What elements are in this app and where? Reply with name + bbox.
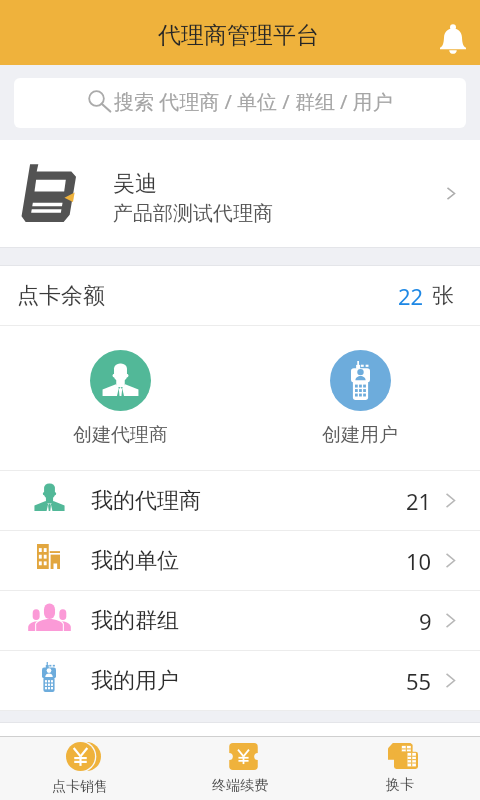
staticText: 我的代理商 bbox=[91, 487, 201, 515]
staticText: 我的群组 bbox=[91, 607, 179, 635]
staticText: 换卡 bbox=[386, 776, 414, 794]
button[interactable]: 搜索 代理商 / 单位 / 群组 / 用户 bbox=[14, 78, 466, 128]
staticText: 我的用户 bbox=[91, 667, 179, 695]
staticText: 点卡销售 bbox=[52, 778, 108, 796]
staticText: 点卡余额 bbox=[17, 282, 105, 310]
button[interactable]: 我的单位 bbox=[0, 531, 480, 590]
button[interactable]: 点卡销售 bbox=[0, 737, 160, 800]
staticText: 21 bbox=[406, 486, 432, 516]
staticText: 9 bbox=[419, 606, 432, 636]
staticText: 创建用户 bbox=[322, 423, 398, 447]
staticText: 我的单位 bbox=[91, 547, 179, 575]
button[interactable]: 我的群组 bbox=[0, 591, 480, 650]
staticText: 终端续费 bbox=[212, 777, 268, 795]
button[interactable]: 换卡 bbox=[320, 737, 480, 800]
staticText: 搜索 代理商 / 单位 / 群组 / 用户 bbox=[114, 88, 393, 115]
staticText: 10 bbox=[406, 546, 432, 576]
staticText: 创建代理商 bbox=[73, 423, 168, 447]
staticText: 张 bbox=[432, 282, 454, 310]
staticText: 代理商管理平台 bbox=[158, 21, 319, 50]
button[interactable]: 创建用户 bbox=[322, 350, 398, 447]
button[interactable]: 吴迪 bbox=[0, 140, 480, 247]
staticText: 产品部测试代理商 bbox=[113, 201, 273, 226]
staticText: 吴迪 bbox=[113, 170, 157, 198]
button[interactable]: 点卡余额 bbox=[0, 266, 480, 325]
button[interactable]: 终端续费 bbox=[160, 737, 320, 800]
button[interactable]: 我的代理商 bbox=[0, 471, 480, 530]
staticText: 22 bbox=[398, 281, 424, 311]
staticText: 55 bbox=[406, 666, 432, 696]
button[interactable]: 创建代理商 bbox=[73, 350, 168, 447]
button[interactable]: Notifications bbox=[431, 17, 475, 61]
button[interactable]: 我的用户 bbox=[0, 651, 480, 710]
